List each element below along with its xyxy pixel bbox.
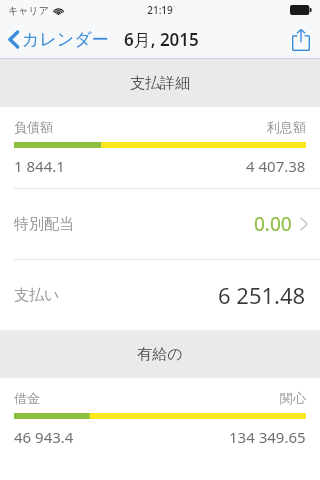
staticText: 負債額 bbox=[14, 119, 53, 135]
staticText: 特別配当 bbox=[14, 215, 74, 234]
staticText: 6 251.48 bbox=[218, 280, 306, 310]
staticText: 46 943.4 bbox=[14, 427, 74, 447]
staticText: 1 844.1 bbox=[14, 156, 65, 176]
button[interactable]: Share bbox=[282, 24, 320, 55]
staticText: 6月, 2015 bbox=[124, 28, 199, 51]
staticText: キャリア bbox=[8, 4, 49, 17]
staticText: 関心 bbox=[280, 390, 306, 406]
button[interactable]: 支払い bbox=[0, 260, 320, 330]
button[interactable]: 負債額 bbox=[0, 107, 320, 188]
staticText: 有給の bbox=[137, 345, 183, 364]
staticText: 借金 bbox=[14, 390, 40, 406]
staticText: 利息額 bbox=[267, 119, 306, 135]
staticText: 支払詳細 bbox=[130, 74, 190, 93]
staticText: 0.00 bbox=[254, 211, 292, 237]
button[interactable]: カレンダー bbox=[0, 25, 115, 54]
staticText: カレンダー bbox=[22, 29, 109, 50]
staticText: 4 407.38 bbox=[246, 156, 306, 176]
staticText: 21:19 bbox=[147, 3, 173, 17]
button[interactable]: 借金 bbox=[0, 378, 320, 459]
staticText: 支払い bbox=[14, 286, 60, 305]
staticText: 134 349.65 bbox=[229, 427, 306, 447]
button[interactable]: 特別配当 bbox=[0, 189, 320, 259]
